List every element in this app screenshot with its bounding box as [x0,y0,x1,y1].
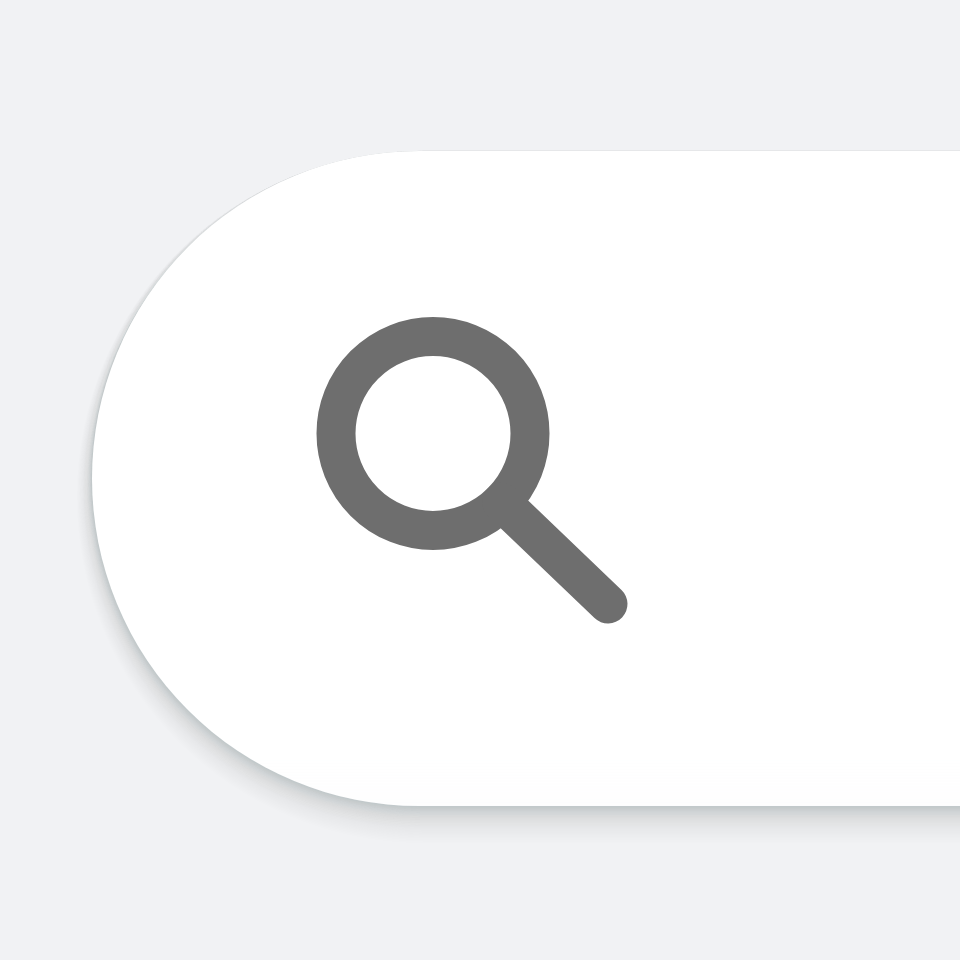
button[interactable]: Search [0,0,960,960]
